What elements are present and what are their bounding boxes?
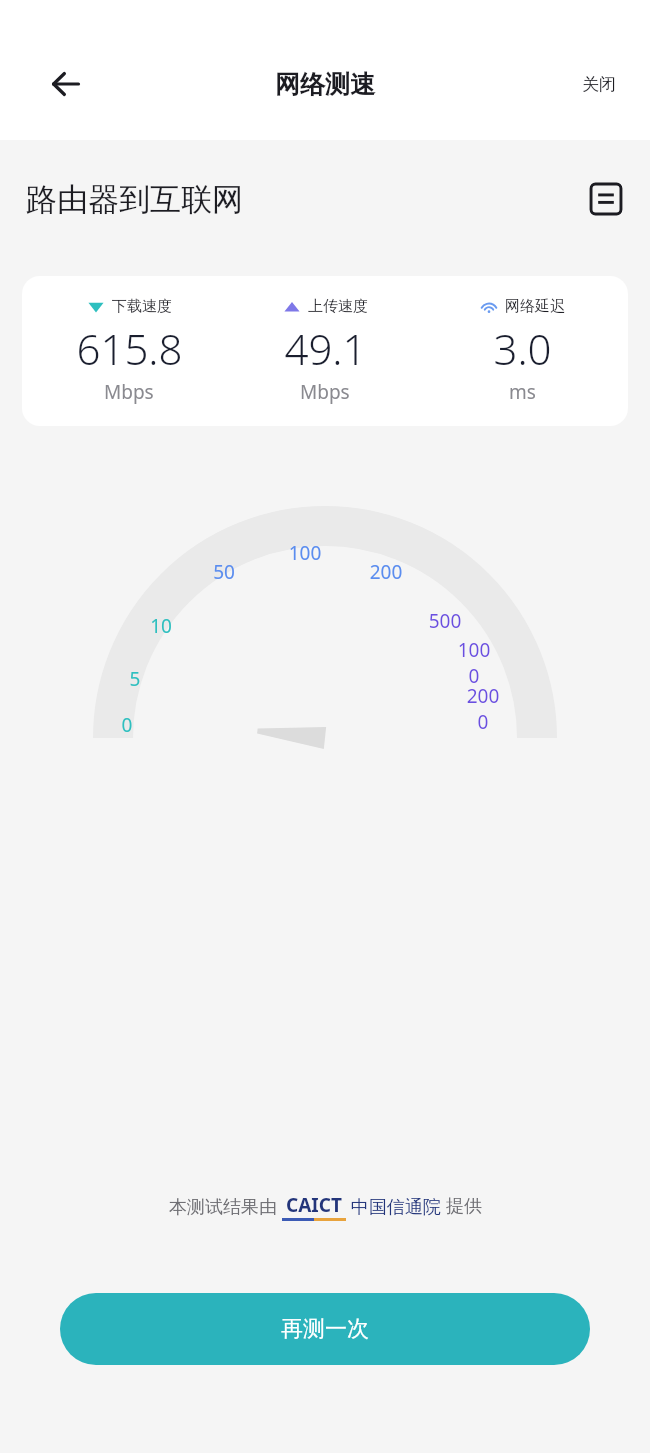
button[interactable]: 下载速度 xyxy=(22,276,628,426)
staticText: 0 xyxy=(107,712,147,738)
staticText: 上传速度 xyxy=(308,297,368,316)
button[interactable]: Back xyxy=(38,57,92,111)
staticText: 1000 xyxy=(454,637,494,689)
staticText: 提供 xyxy=(446,1195,482,1218)
staticText: 下载速度 xyxy=(112,297,172,316)
staticText: Mbps xyxy=(104,379,154,405)
button[interactable]: 再测一次 xyxy=(60,1293,590,1365)
staticText: 本测试结果由 xyxy=(169,1194,282,1219)
staticText: 再测一次 xyxy=(281,1315,369,1343)
staticText: 关闭 xyxy=(582,74,616,95)
staticText: 中国信通院 xyxy=(346,1194,446,1219)
staticText: 49.1 xyxy=(284,320,367,377)
staticText: 网络延迟 xyxy=(505,297,565,316)
staticText: 50 xyxy=(204,559,244,585)
staticText: Mbps xyxy=(300,379,350,405)
staticText: 路由器到互联网 xyxy=(26,180,243,219)
staticText: ms xyxy=(509,379,536,405)
staticText: 2000 xyxy=(463,683,503,735)
button[interactable]: History list xyxy=(584,177,628,221)
staticText: 网络测速 xyxy=(275,69,375,100)
staticText: 10 xyxy=(141,613,181,639)
staticText: 3.0 xyxy=(493,320,552,377)
staticText: 100 xyxy=(285,540,325,566)
staticText: 615.8 xyxy=(76,320,183,377)
staticText: 500 xyxy=(425,608,465,634)
staticText: 200 xyxy=(366,559,406,585)
staticText: CAICT xyxy=(286,1192,342,1218)
button[interactable]: 关闭 xyxy=(566,64,632,105)
staticText: 5 xyxy=(115,666,155,692)
